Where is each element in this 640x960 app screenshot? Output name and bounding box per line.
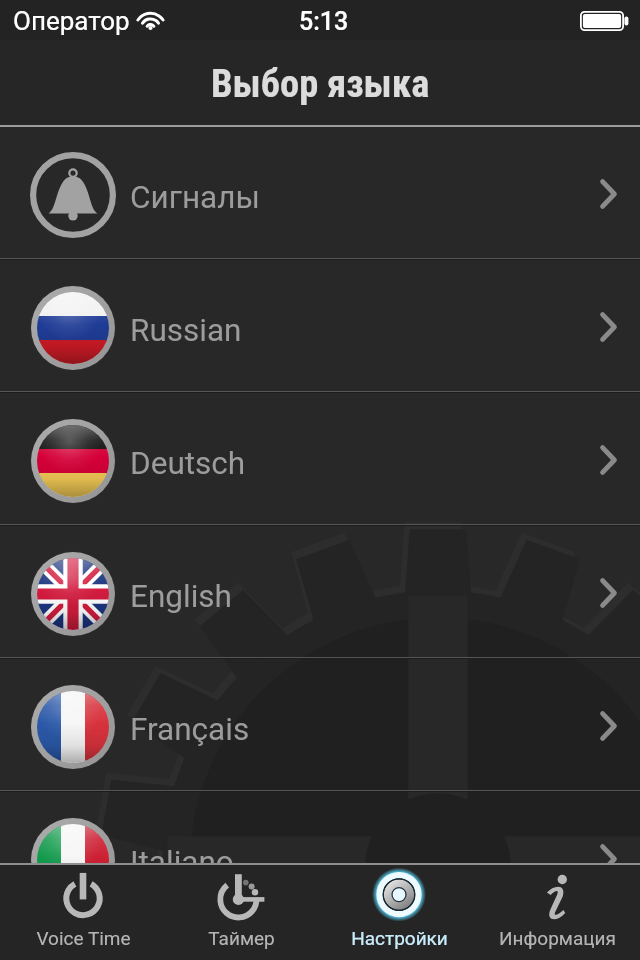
staticText: Сигналы <box>130 179 260 216</box>
button[interactable]: Сигналы <box>0 127 640 260</box>
staticText: Voice Time <box>36 927 131 949</box>
staticText: Français <box>130 711 250 748</box>
button[interactable]: English <box>0 526 640 659</box>
button[interactable]: Настройки <box>320 863 478 960</box>
staticText: English <box>130 578 232 615</box>
staticText: Deutsch <box>130 445 246 482</box>
staticText: Таймер <box>208 927 275 949</box>
other: Wi-Fi <box>139 13 162 30</box>
staticText: Russian <box>130 312 242 349</box>
button[interactable]: Таймер <box>162 863 320 960</box>
button[interactable]: Italiano <box>0 792 640 925</box>
button[interactable]: Russian <box>0 260 640 393</box>
staticText: Оператор <box>13 6 130 36</box>
staticText: Информация <box>499 927 616 949</box>
button[interactable]: Français <box>0 659 640 792</box>
button[interactable]: Deutsch <box>0 393 640 526</box>
button[interactable]: Информация <box>478 863 636 960</box>
other: Battery <box>580 11 629 31</box>
staticText: Настройки <box>351 927 448 949</box>
staticText: Выбор языка <box>211 61 430 106</box>
button[interactable]: Voice Time <box>4 863 162 960</box>
staticText: Italiano <box>130 844 234 881</box>
staticText: 5:13 <box>299 7 349 36</box>
